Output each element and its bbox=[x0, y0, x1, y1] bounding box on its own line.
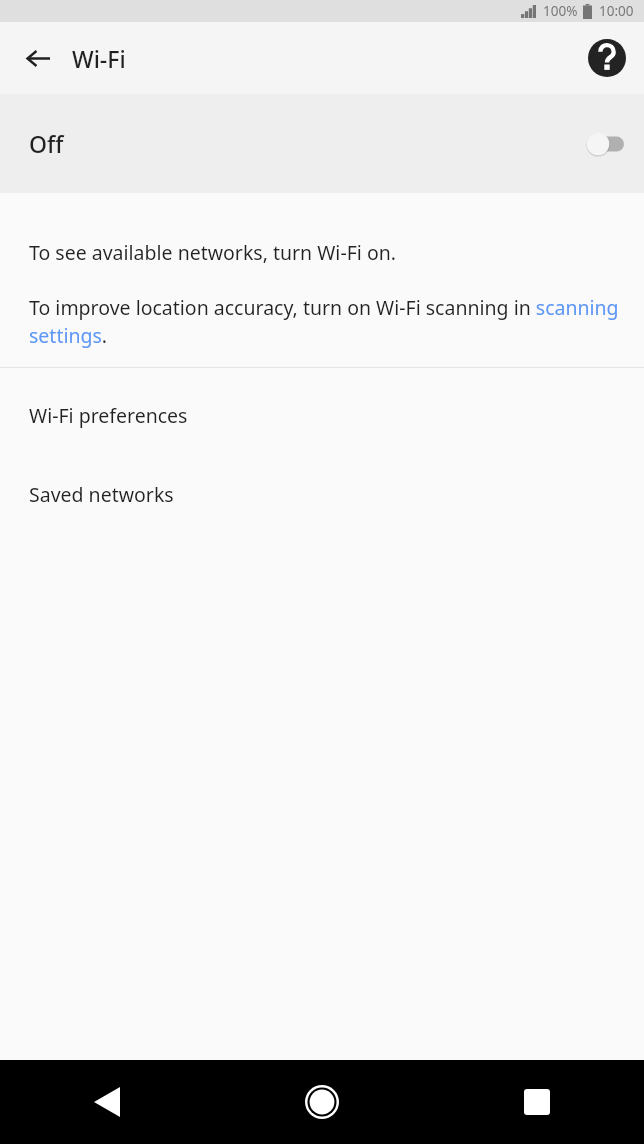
staticText: Off bbox=[29, 128, 64, 159]
staticText: Wi-Fi preferences bbox=[29, 402, 188, 429]
staticText: Wi-Fi bbox=[72, 43, 126, 74]
staticText: 100% bbox=[543, 2, 578, 20]
staticText: To improve location accuracy, turn on Wi… bbox=[29, 294, 622, 349]
staticText: Saved networks bbox=[29, 481, 174, 508]
staticText: To see available networks, turn Wi-Fi on… bbox=[29, 239, 396, 266]
button[interactable]: Back bbox=[75, 1070, 139, 1134]
button[interactable]: Wi-Fi preferences bbox=[0, 368, 644, 439]
staticText: 10:00 bbox=[599, 2, 634, 20]
button[interactable]: Off bbox=[0, 94, 644, 193]
button[interactable]: Recent apps bbox=[505, 1070, 569, 1134]
button[interactable]: Help bbox=[584, 35, 630, 81]
button[interactable]: Home bbox=[290, 1070, 354, 1134]
button[interactable]: Saved networks bbox=[0, 439, 644, 518]
button[interactable]: Back bbox=[14, 34, 62, 82]
